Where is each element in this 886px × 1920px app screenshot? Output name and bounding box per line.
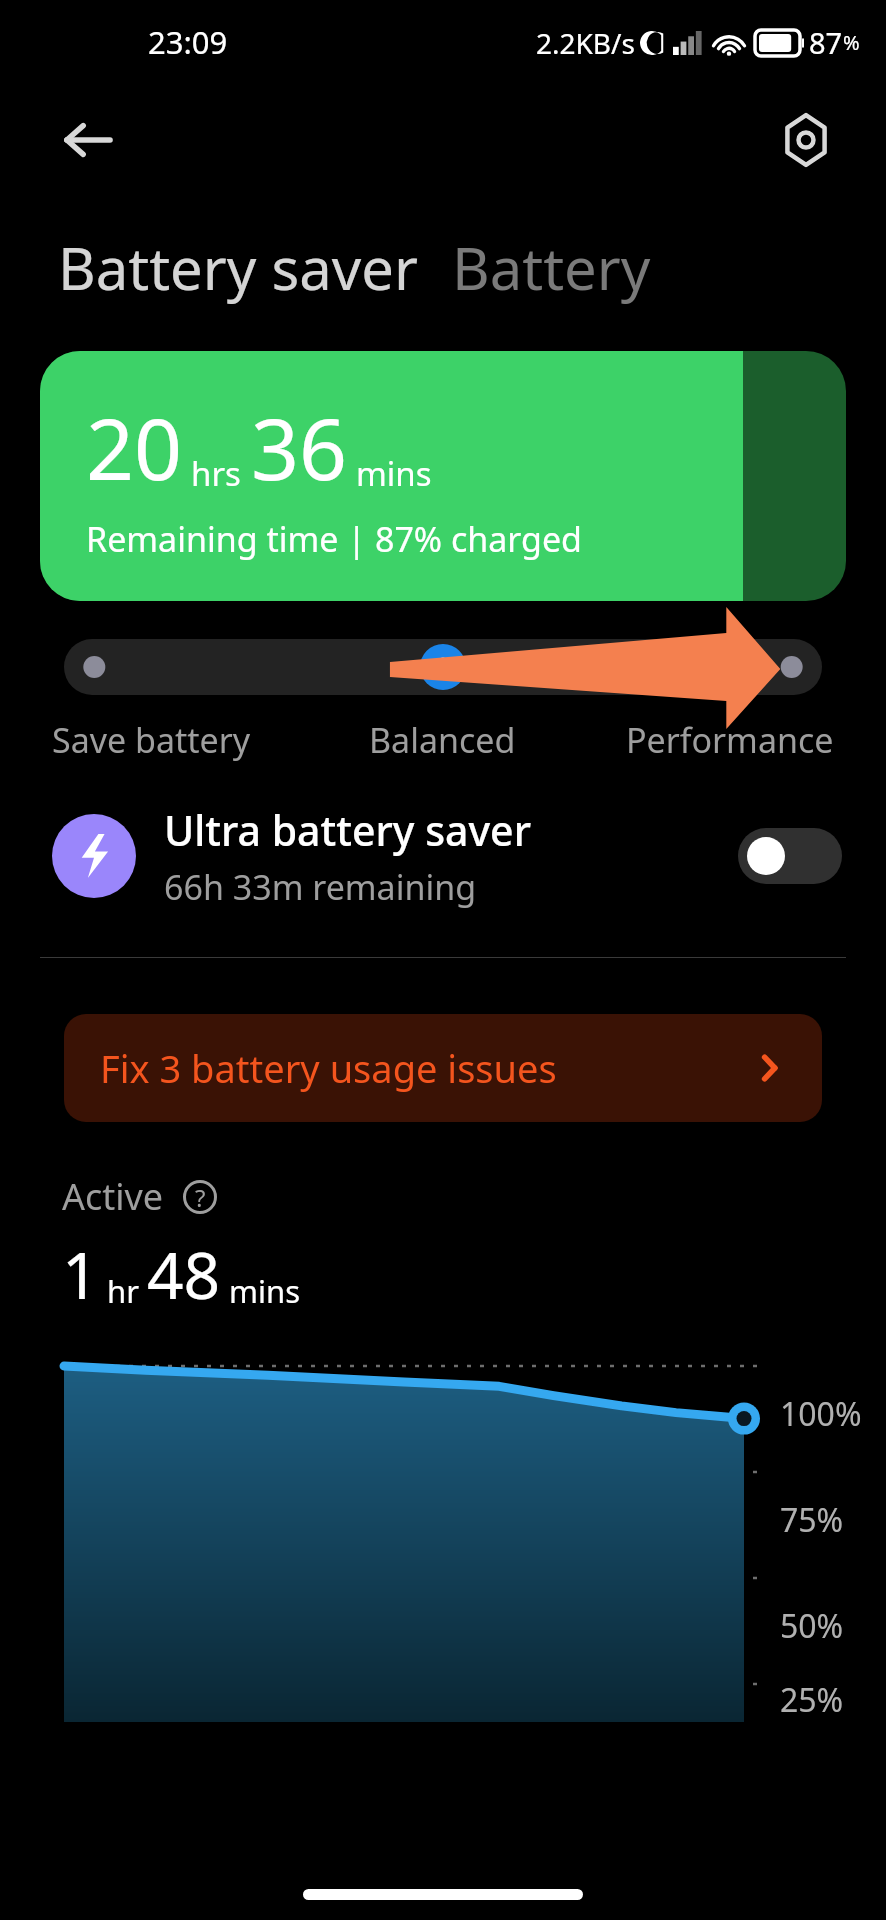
button[interactable]: 20 (40, 351, 846, 601)
staticText: 20 (86, 390, 183, 504)
staticText: hrs (191, 451, 241, 496)
button[interactable]: Performance mode slider (64, 639, 822, 695)
staticText: 66h 33m remaining (164, 864, 477, 910)
staticText: 25% (780, 1678, 844, 1722)
button[interactable]: Performance (626, 717, 834, 763)
staticText: 87 (809, 23, 843, 62)
staticText: mins (356, 451, 432, 496)
staticText: 75% (780, 1498, 844, 1542)
staticText: 36 (251, 390, 348, 504)
staticText: Remaining time | 87% charged (86, 516, 583, 562)
button[interactable]: Ultra battery saver toggle (738, 828, 842, 884)
staticText: mins (229, 1270, 300, 1312)
staticText: ? (195, 1181, 206, 1214)
staticText: 50% (780, 1604, 844, 1648)
button[interactable]: Ultra battery saver (0, 791, 886, 921)
button[interactable]: Settings (762, 96, 850, 184)
button[interactable]: Save battery (52, 717, 251, 763)
staticText: 2.2KB/s (536, 24, 635, 62)
button[interactable]: Help about Active time (178, 1175, 222, 1219)
button[interactable]: Battery saver (58, 228, 418, 307)
button[interactable]: Back (40, 92, 136, 188)
staticText: Fix 3 battery usage issues (100, 1042, 557, 1094)
staticText: 48 (147, 1231, 221, 1318)
staticText: Active (62, 1172, 164, 1221)
staticText: Ultra battery saver (164, 802, 531, 858)
staticText: 100% (780, 1392, 862, 1436)
button[interactable]: Battery (452, 228, 651, 307)
button[interactable]: Fix 3 battery usage issues (64, 1014, 822, 1122)
staticText: % (843, 29, 860, 56)
button[interactable]: Balanced (369, 717, 516, 763)
staticText: hr (107, 1270, 139, 1312)
staticText: 23:09 (148, 21, 228, 63)
staticText: 1 (62, 1231, 99, 1318)
